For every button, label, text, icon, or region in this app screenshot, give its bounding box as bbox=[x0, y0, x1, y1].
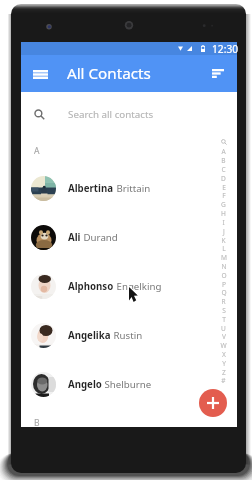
staticText: I bbox=[222, 218, 225, 227]
staticText: G bbox=[221, 200, 226, 209]
staticText: Rustin bbox=[111, 329, 143, 342]
staticText: Brittain bbox=[114, 182, 151, 195]
button[interactable]: Alphonso bbox=[21, 262, 237, 311]
staticText: F bbox=[222, 191, 226, 200]
staticText: O bbox=[221, 271, 227, 280]
staticText: B bbox=[34, 417, 40, 427]
staticText: T bbox=[222, 315, 226, 324]
staticText: C bbox=[221, 165, 226, 174]
staticText: Q bbox=[221, 288, 227, 297]
staticText: A bbox=[34, 145, 40, 157]
staticText: R bbox=[221, 297, 226, 306]
staticText: W bbox=[220, 341, 227, 350]
staticText: D bbox=[221, 174, 226, 183]
staticText: J bbox=[223, 227, 225, 236]
button[interactable]: Angelo bbox=[21, 360, 237, 409]
staticText: Durand bbox=[81, 231, 118, 244]
staticText: Albertina bbox=[68, 182, 114, 195]
staticText: A bbox=[221, 147, 226, 156]
staticText: Angelika bbox=[68, 329, 111, 342]
button[interactable]: Sort bbox=[203, 55, 233, 92]
staticText: # bbox=[221, 376, 226, 385]
staticText: M bbox=[221, 253, 227, 262]
staticText: E bbox=[222, 183, 226, 192]
staticText: X bbox=[222, 350, 226, 359]
staticText: Engelking bbox=[114, 280, 162, 293]
staticText: Ali bbox=[68, 231, 81, 244]
staticText: Angelo bbox=[68, 378, 102, 391]
staticText: 12:30 bbox=[212, 42, 239, 55]
staticText: H bbox=[221, 209, 226, 218]
staticText: U bbox=[221, 324, 226, 333]
staticText: K bbox=[221, 236, 226, 245]
staticText: L bbox=[222, 244, 226, 253]
button[interactable]: Open navigation drawer bbox=[22, 55, 59, 92]
staticText: Search all contacts bbox=[68, 108, 154, 121]
staticText: N bbox=[221, 262, 227, 271]
staticText: V bbox=[222, 332, 226, 341]
button[interactable]: Albertina bbox=[21, 164, 237, 213]
staticText: Shelburne bbox=[102, 378, 152, 391]
staticText: All Contacts bbox=[67, 63, 151, 84]
staticText: P bbox=[222, 280, 226, 289]
staticText: Alphonso bbox=[68, 280, 114, 293]
button[interactable]: Angelika bbox=[21, 311, 237, 360]
button[interactable]: Ali bbox=[21, 213, 237, 262]
staticText: Y bbox=[222, 359, 226, 368]
staticText: S bbox=[222, 306, 226, 315]
staticText: B bbox=[221, 156, 226, 165]
button[interactable]: Add contact bbox=[199, 389, 227, 417]
button[interactable]: Scroll alphabet index bbox=[217, 42, 230, 427]
button[interactable]: Search all contacts bbox=[21, 92, 237, 137]
staticText: Z bbox=[222, 368, 226, 377]
